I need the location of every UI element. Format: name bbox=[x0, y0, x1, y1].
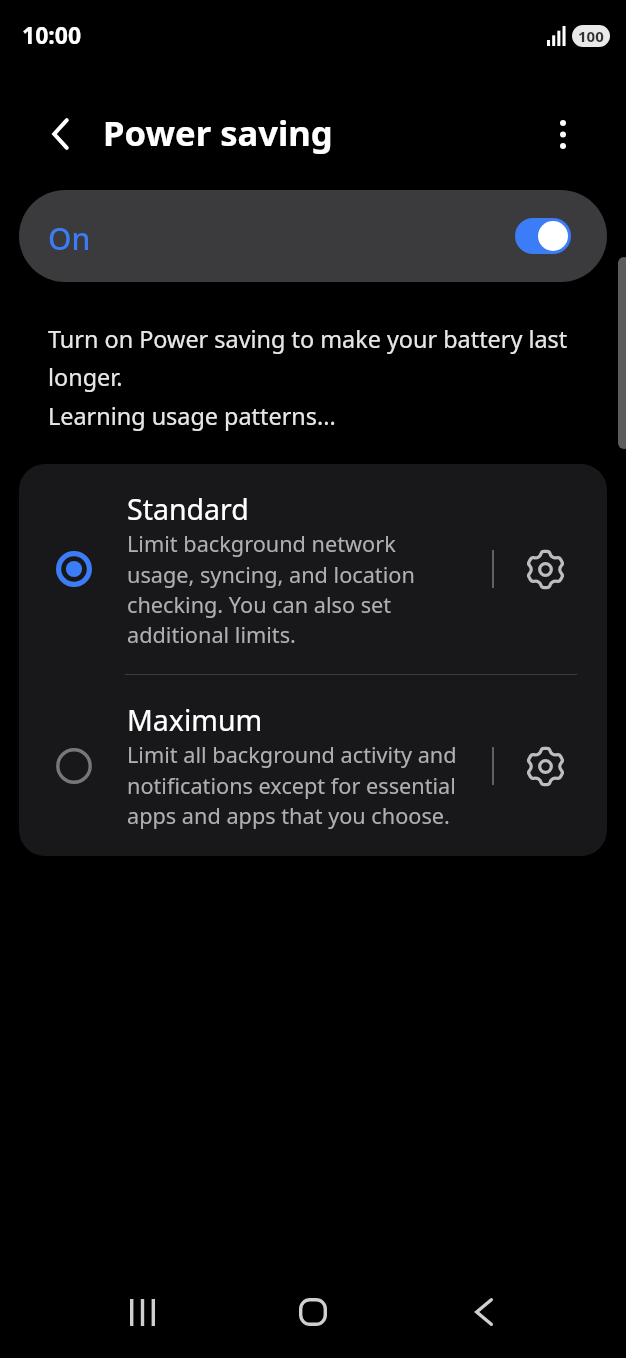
button[interactable]: Back bbox=[398, 1266, 569, 1358]
staticText: 10:00 bbox=[22, 19, 82, 50]
button[interactable]: Navigate up bbox=[36, 110, 84, 158]
staticText: On bbox=[48, 218, 91, 259]
staticText: Maximum bbox=[127, 701, 263, 740]
button[interactable]: Home bbox=[227, 1266, 398, 1358]
button[interactable]: More options bbox=[539, 110, 587, 158]
button[interactable]: Power saving switch, on bbox=[515, 218, 571, 254]
button[interactable]: Recent apps bbox=[57, 1266, 227, 1358]
staticText: Power saving bbox=[103, 109, 333, 156]
staticText: Limit background network usage, syncing,… bbox=[127, 529, 458, 649]
button[interactable]: Standard bbox=[19, 464, 607, 674]
button[interactable]: Settings for Standard bbox=[507, 531, 583, 607]
staticText: Standard bbox=[127, 490, 249, 529]
button[interactable]: Maximum bbox=[19, 675, 607, 856]
staticText: Limit all background activity and notifi… bbox=[127, 740, 458, 830]
staticText: 100 bbox=[578, 26, 604, 46]
button[interactable]: On bbox=[19, 190, 607, 282]
button[interactable]: Settings for Maximum bbox=[507, 728, 583, 804]
staticText: Turn on Power saving to make your batter… bbox=[48, 323, 573, 432]
